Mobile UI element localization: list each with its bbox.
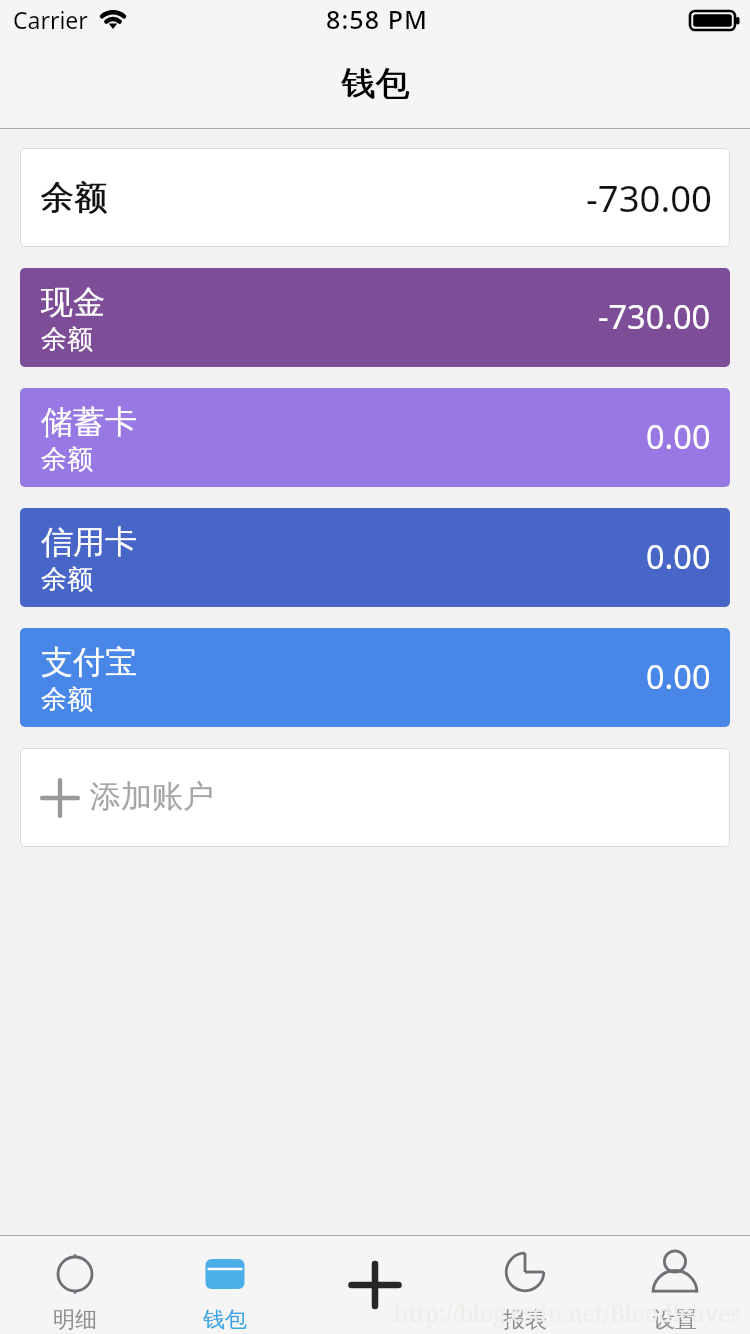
staticText: Carrier bbox=[13, 4, 88, 35]
staticText: 0.00 bbox=[646, 534, 711, 578]
staticText: 8:58 PM bbox=[326, 2, 429, 36]
button[interactable]: 设置 bbox=[600, 1236, 750, 1334]
staticText: 设置 bbox=[653, 1306, 697, 1334]
staticText: 余额 bbox=[41, 443, 93, 476]
staticText: -730.00 bbox=[598, 294, 711, 338]
button[interactable]: 添加账户 bbox=[20, 748, 730, 847]
button[interactable]: 余额 bbox=[20, 148, 730, 247]
button[interactable]: Add transaction bbox=[300, 1236, 450, 1334]
staticText: 钱包 bbox=[203, 1306, 247, 1334]
staticText: 0.00 bbox=[646, 414, 711, 458]
staticText: 余额 bbox=[41, 177, 108, 219]
staticText: 0.00 bbox=[646, 654, 711, 698]
button[interactable]: 信用卡 bbox=[20, 508, 730, 607]
staticText: 现金 bbox=[41, 282, 105, 322]
staticText: 明细 bbox=[53, 1306, 97, 1334]
button[interactable]: 报表 bbox=[450, 1236, 600, 1334]
staticText: 添加账户 bbox=[90, 777, 214, 816]
staticText: 储蓄卡 bbox=[41, 402, 137, 442]
button[interactable]: 钱包 bbox=[150, 1236, 300, 1334]
staticText: -730.00 bbox=[586, 173, 712, 223]
staticText: 余额 bbox=[40, 177, 107, 219]
staticText: 余额 bbox=[41, 683, 93, 716]
button[interactable]: 支付宝 bbox=[20, 628, 730, 727]
staticText: 支付宝 bbox=[41, 642, 137, 682]
staticText: 报表 bbox=[503, 1306, 547, 1334]
staticText: 余额 bbox=[41, 563, 93, 596]
button[interactable]: 明细 bbox=[0, 1236, 150, 1334]
staticText: 余额 bbox=[41, 323, 93, 356]
staticText: http://blog.csdn.net/Bloodleaves bbox=[394, 1297, 741, 1328]
staticText: 信用卡 bbox=[41, 522, 137, 562]
staticText: 钱包 bbox=[341, 62, 409, 105]
button[interactable]: 现金 bbox=[20, 268, 730, 367]
button[interactable]: 储蓄卡 bbox=[20, 388, 730, 487]
staticText: 钱包 bbox=[342, 62, 410, 105]
